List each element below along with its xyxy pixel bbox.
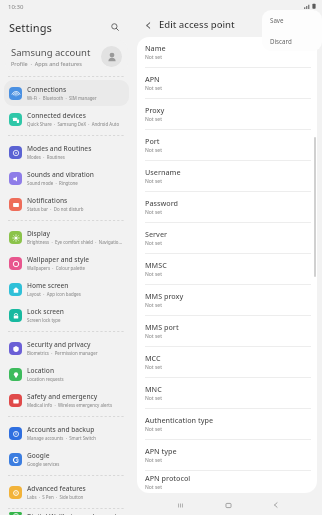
button[interactable]: Username — [137, 161, 317, 191]
staticText: Screen lock type — [27, 317, 61, 323]
staticText: Digital Wellbeing and parental controls — [27, 512, 124, 515]
staticText: Password — [145, 198, 179, 208]
staticText: Not set — [145, 271, 162, 278]
staticText: Medical info · Wireless emergency alerts — [27, 402, 113, 408]
button[interactable]: Connections — [4, 80, 129, 106]
button[interactable]: Google — [4, 446, 129, 472]
staticText: MMS port — [145, 322, 179, 332]
staticText: Display — [27, 229, 50, 238]
staticText: Quick Share · Samsung DeX · Android Auto — [27, 121, 120, 127]
button[interactable]: Digital Wellbeing and parental controls — [4, 512, 129, 515]
staticText: Save — [270, 16, 284, 24]
staticText: Samsung account — [11, 46, 91, 59]
staticText: Connected devices — [27, 111, 86, 120]
staticText: Safety and emergency — [27, 392, 98, 401]
button[interactable]: Discard — [262, 30, 322, 51]
staticText: Security and privacy — [27, 340, 91, 349]
staticText: Wallpapers · Colour palette — [27, 265, 86, 271]
staticText: Proxy — [145, 105, 165, 115]
staticText: Settings — [9, 20, 52, 35]
button[interactable]: MMSC — [137, 254, 317, 284]
staticText: Not set — [145, 240, 162, 247]
staticText: Authentication type — [145, 415, 214, 425]
staticText: Location — [27, 366, 55, 375]
staticText: APN type — [145, 446, 177, 456]
staticText: Not set — [145, 178, 162, 185]
staticText: Not set — [145, 484, 162, 491]
button[interactable]: MCC — [137, 347, 317, 377]
staticText: Modes · Routines — [27, 154, 65, 160]
staticText: MCC — [145, 353, 161, 363]
button[interactable]: APN type — [137, 440, 317, 470]
button[interactable]: Sounds and vibration — [4, 165, 129, 191]
staticText: Not set — [145, 85, 162, 92]
button[interactable]: APN — [137, 68, 317, 98]
button[interactable]: Server — [137, 223, 317, 253]
staticText: Name — [145, 43, 166, 53]
button[interactable]: Back — [265, 495, 287, 515]
staticText: Location requests — [27, 376, 64, 382]
button[interactable]: Password — [137, 192, 317, 222]
staticText: Sound mode · Ringtone — [27, 180, 78, 186]
button[interactable]: Home screen — [4, 276, 129, 302]
staticText: APN protocol — [145, 473, 191, 483]
button[interactable]: MMS port — [137, 316, 317, 346]
staticText: Modes and Routines — [27, 144, 92, 153]
button[interactable]: Location — [4, 361, 129, 387]
staticText: Layout · App icon badges — [27, 291, 81, 297]
staticText: Google — [27, 451, 50, 460]
button[interactable]: Connected devices — [4, 106, 129, 132]
staticText: MNC — [145, 384, 162, 394]
staticText: Sounds and vibration — [27, 170, 94, 179]
button[interactable]: Save — [262, 10, 322, 30]
staticText: Not set — [145, 147, 162, 154]
staticText: Edit access point — [159, 18, 235, 31]
staticText: Not set — [145, 209, 162, 216]
button[interactable]: Back — [139, 16, 157, 34]
button[interactable]: Name — [137, 37, 317, 67]
staticText: Not set — [145, 395, 162, 402]
staticText: 10:30 — [8, 3, 24, 11]
button[interactable]: APN protocol — [137, 471, 317, 493]
button[interactable]: Accounts and backup — [4, 420, 129, 446]
staticText: Not set — [145, 364, 162, 371]
button[interactable]: Modes and Routines — [4, 139, 129, 165]
button[interactable]: Security and privacy — [4, 335, 129, 361]
button[interactable]: MNC — [137, 378, 317, 408]
button[interactable]: Authentication type — [137, 409, 317, 439]
button[interactable]: Notifications — [4, 191, 129, 217]
staticText: Biometrics · Permission manager — [27, 350, 98, 356]
staticText: Lock screen — [27, 307, 64, 316]
staticText: Wi-Fi · Bluetooth · SIM manager — [27, 95, 97, 101]
staticText: Accounts and backup — [27, 425, 95, 434]
staticText: APN — [145, 74, 160, 84]
staticText: Not set — [145, 302, 162, 309]
staticText: Username — [145, 167, 181, 177]
staticText: Connections — [27, 85, 67, 94]
staticText: Labs · S Pen · Side button — [27, 494, 84, 500]
staticText: Google services — [27, 461, 60, 467]
button[interactable]: Port — [137, 130, 317, 160]
staticText: MMS proxy — [145, 291, 184, 301]
button[interactable]: Wallpaper and style — [4, 250, 129, 276]
staticText: Brightness · Eye comfort shield · Naviga… — [27, 239, 124, 245]
staticText: Not set — [145, 54, 162, 61]
staticText: MMSC — [145, 260, 167, 270]
staticText: Not set — [145, 116, 162, 123]
button[interactable]: Search — [106, 18, 124, 36]
staticText: Server — [145, 229, 168, 239]
button[interactable]: Lock screen — [4, 302, 129, 328]
staticText: Not set — [145, 457, 162, 464]
staticText: Advanced features — [27, 484, 86, 493]
staticText: Status bar · Do not disturb — [27, 206, 84, 212]
button[interactable]: MMS proxy — [137, 285, 317, 315]
staticText: Profile · Apps and features — [11, 60, 82, 67]
button[interactable]: Home — [217, 495, 239, 515]
button[interactable]: Advanced features — [4, 479, 129, 505]
button[interactable]: Recents — [169, 495, 191, 515]
button[interactable]: Samsung account — [5, 40, 128, 72]
button[interactable]: Safety and emergency — [4, 387, 129, 413]
staticText: Not set — [145, 426, 162, 433]
button[interactable]: Proxy — [137, 99, 317, 129]
button[interactable]: Display — [4, 224, 129, 250]
